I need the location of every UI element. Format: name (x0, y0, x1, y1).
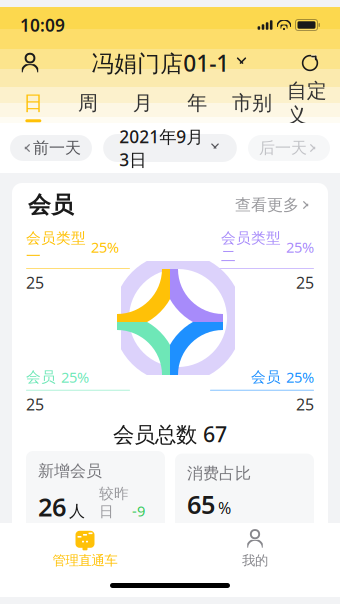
button[interactable]: 我的 (170, 526, 340, 572)
button[interactable]: 后一天 (248, 135, 330, 161)
staticText: 25% (286, 367, 314, 387)
button[interactable]: 年 (170, 83, 225, 123)
button[interactable]: 日 (6, 83, 61, 123)
staticText: 月 (133, 91, 153, 115)
staticText: 日 (23, 91, 43, 115)
staticText: 25% (286, 237, 314, 257)
button[interactable]: 自定义 (279, 83, 334, 123)
staticText: 新增会员 (38, 461, 102, 481)
staticText: 较昨日 (99, 485, 129, 521)
staticText: -9 (132, 501, 145, 521)
staticText: 我的 (242, 552, 268, 569)
staticText: 年 (187, 91, 207, 115)
staticText: 25 (296, 394, 314, 415)
staticText: % (218, 497, 231, 518)
button[interactable]: 管理直通车 (0, 526, 170, 572)
staticText: 26 (38, 490, 66, 523)
staticText: 周 (78, 91, 98, 115)
button[interactable]: 市别 (225, 83, 279, 123)
button[interactable]: 刷新 (288, 43, 332, 83)
staticText: 管理直通车 (52, 552, 117, 569)
staticText: 后一天 (259, 138, 307, 158)
staticText: 冯娟门店01-1 (91, 48, 229, 78)
button[interactable]: 周 (61, 83, 115, 123)
staticText: 25 (296, 272, 314, 293)
staticText: 会员 (28, 191, 74, 219)
staticText: 会员类型一 (26, 229, 86, 265)
button[interactable]: 会员 (12, 183, 328, 227)
button[interactable]: 2021年9月3日 (103, 134, 237, 162)
button[interactable]: 冯娟门店01-1 (91, 48, 249, 78)
staticText: 市别 (232, 91, 272, 115)
staticText: 会员 (251, 368, 281, 386)
button[interactable]: 前一天 (10, 135, 92, 161)
button[interactable]: 月 (115, 83, 170, 123)
staticText: 25 (26, 394, 44, 415)
staticText: 会员类型二 (221, 229, 281, 265)
staticText: 10:09 (20, 13, 65, 36)
staticText: 25% (91, 237, 119, 257)
button[interactable]: 账户 (8, 43, 52, 83)
staticText: 查看更多 (235, 195, 299, 215)
staticText: 人 (69, 501, 85, 521)
staticText: 自定义 (287, 78, 327, 127)
staticText: 2021年9月3日 (119, 125, 203, 171)
staticText: 消费占比 (187, 464, 251, 483)
staticText: 会员总数 67 (113, 420, 227, 448)
staticText: 25 (26, 272, 44, 293)
staticText: 65 (187, 487, 215, 521)
staticText: 前一天 (33, 138, 81, 158)
staticText: 25% (61, 367, 89, 387)
staticText: 会员 (26, 368, 56, 386)
